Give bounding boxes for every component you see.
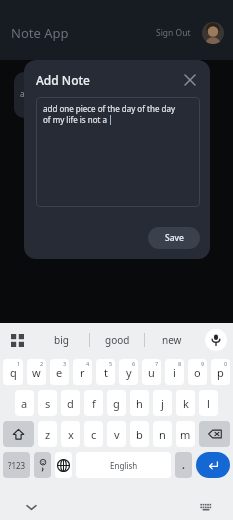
button[interactable]: z bbox=[38, 421, 57, 447]
staticText: o bbox=[194, 365, 201, 380]
button[interactable]: q bbox=[3, 359, 23, 385]
button[interactable]: k bbox=[176, 390, 195, 416]
staticText: s bbox=[45, 396, 51, 411]
staticText: x bbox=[68, 427, 74, 442]
button[interactable]: b bbox=[130, 421, 149, 447]
button[interactable]: e bbox=[50, 359, 69, 385]
staticText: 9 bbox=[201, 360, 205, 367]
staticText: h bbox=[136, 396, 143, 411]
staticText: w bbox=[32, 365, 41, 380]
button[interactable]: p bbox=[211, 359, 230, 385]
button[interactable]: h bbox=[130, 390, 149, 416]
staticText: m bbox=[180, 427, 191, 442]
staticText: Save bbox=[165, 232, 184, 244]
staticText: g bbox=[113, 396, 120, 411]
button[interactable]: Shift bbox=[3, 421, 34, 447]
button[interactable]: w bbox=[27, 359, 46, 385]
button[interactable]: y bbox=[119, 359, 138, 385]
button[interactable]: big bbox=[34, 323, 89, 357]
staticText: t bbox=[104, 365, 108, 380]
button[interactable]: Profile bbox=[202, 22, 224, 44]
staticText: r bbox=[80, 365, 85, 380]
button[interactable]: g bbox=[107, 390, 126, 416]
staticText: y bbox=[126, 365, 132, 380]
button[interactable]: x bbox=[61, 421, 80, 447]
staticText: good bbox=[105, 333, 130, 347]
button[interactable]: d bbox=[61, 390, 80, 416]
button[interactable]: new bbox=[145, 323, 199, 357]
staticText: 3 bbox=[63, 360, 67, 367]
staticText: v bbox=[114, 427, 120, 442]
button[interactable]: m bbox=[176, 421, 195, 447]
staticText: d bbox=[67, 396, 74, 411]
staticText: k bbox=[183, 396, 189, 411]
staticText: English bbox=[110, 460, 138, 471]
staticText: l bbox=[207, 396, 210, 411]
button[interactable]: Voice input bbox=[199, 323, 233, 357]
staticText: z bbox=[45, 427, 51, 442]
button[interactable]: n bbox=[153, 421, 172, 447]
staticText: . bbox=[182, 458, 185, 472]
staticText: 1 bbox=[17, 360, 21, 367]
button[interactable]: Change language bbox=[55, 452, 72, 478]
button[interactable]: a bbox=[14, 72, 134, 118]
staticText: u bbox=[148, 365, 155, 380]
staticText: e bbox=[56, 365, 63, 380]
button[interactable]: Emoji bbox=[34, 452, 51, 478]
staticText: 8 bbox=[178, 360, 182, 367]
button[interactable]: r bbox=[73, 359, 92, 385]
button[interactable]: j bbox=[153, 390, 172, 416]
button[interactable]: Clipboard bbox=[0, 323, 34, 357]
button[interactable]: f bbox=[84, 390, 103, 416]
button[interactable]: . bbox=[175, 452, 192, 478]
staticText: f bbox=[92, 396, 96, 411]
staticText: ?123 bbox=[8, 460, 26, 471]
button[interactable]: s bbox=[38, 390, 57, 416]
staticText: Sign Out bbox=[156, 27, 191, 39]
button[interactable]: Close bbox=[180, 70, 200, 90]
button[interactable]: Enter bbox=[196, 452, 230, 478]
staticText: 0 bbox=[224, 360, 228, 367]
button[interactable]: c bbox=[84, 421, 103, 447]
staticText: q bbox=[10, 365, 17, 380]
button[interactable]: u bbox=[142, 359, 161, 385]
staticText: new bbox=[162, 333, 182, 347]
staticText: 2 bbox=[40, 360, 44, 367]
button[interactable]: English bbox=[76, 452, 171, 478]
staticText: 5 bbox=[109, 360, 113, 367]
staticText: i bbox=[173, 365, 176, 380]
button[interactable]: t bbox=[96, 359, 115, 385]
button[interactable]: Hide keyboard bbox=[20, 496, 42, 518]
staticText: a bbox=[21, 396, 28, 411]
staticText: c bbox=[91, 427, 97, 442]
staticText: j bbox=[161, 396, 164, 411]
staticText: big bbox=[54, 333, 69, 347]
staticText: Note App bbox=[11, 24, 69, 42]
staticText: 6 bbox=[132, 360, 136, 367]
button[interactable]: i bbox=[165, 359, 184, 385]
button[interactable]: good bbox=[90, 323, 144, 357]
staticText: a bbox=[20, 88, 25, 99]
button[interactable]: add one piece of the day of the day bbox=[36, 97, 200, 207]
staticText: add one piece of the day of the day bbox=[43, 103, 175, 114]
button[interactable]: Backspace bbox=[199, 421, 230, 447]
staticText: of my life is not a bbox=[43, 114, 110, 125]
button[interactable]: Switch keyboard bbox=[195, 496, 217, 518]
staticText: p bbox=[217, 365, 224, 380]
button[interactable]: a bbox=[15, 390, 34, 416]
button[interactable]: v bbox=[107, 421, 126, 447]
staticText: Add Note bbox=[36, 72, 90, 88]
button[interactable]: ?123 bbox=[3, 452, 30, 478]
button[interactable]: Save bbox=[148, 227, 200, 249]
button[interactable]: o bbox=[188, 359, 207, 385]
staticText: 4 bbox=[86, 360, 90, 367]
button[interactable]: l bbox=[199, 390, 218, 416]
staticText: b bbox=[136, 427, 143, 442]
button[interactable]: Sign Out bbox=[153, 24, 194, 42]
staticText: 7 bbox=[155, 360, 159, 367]
staticText: n bbox=[159, 427, 166, 442]
